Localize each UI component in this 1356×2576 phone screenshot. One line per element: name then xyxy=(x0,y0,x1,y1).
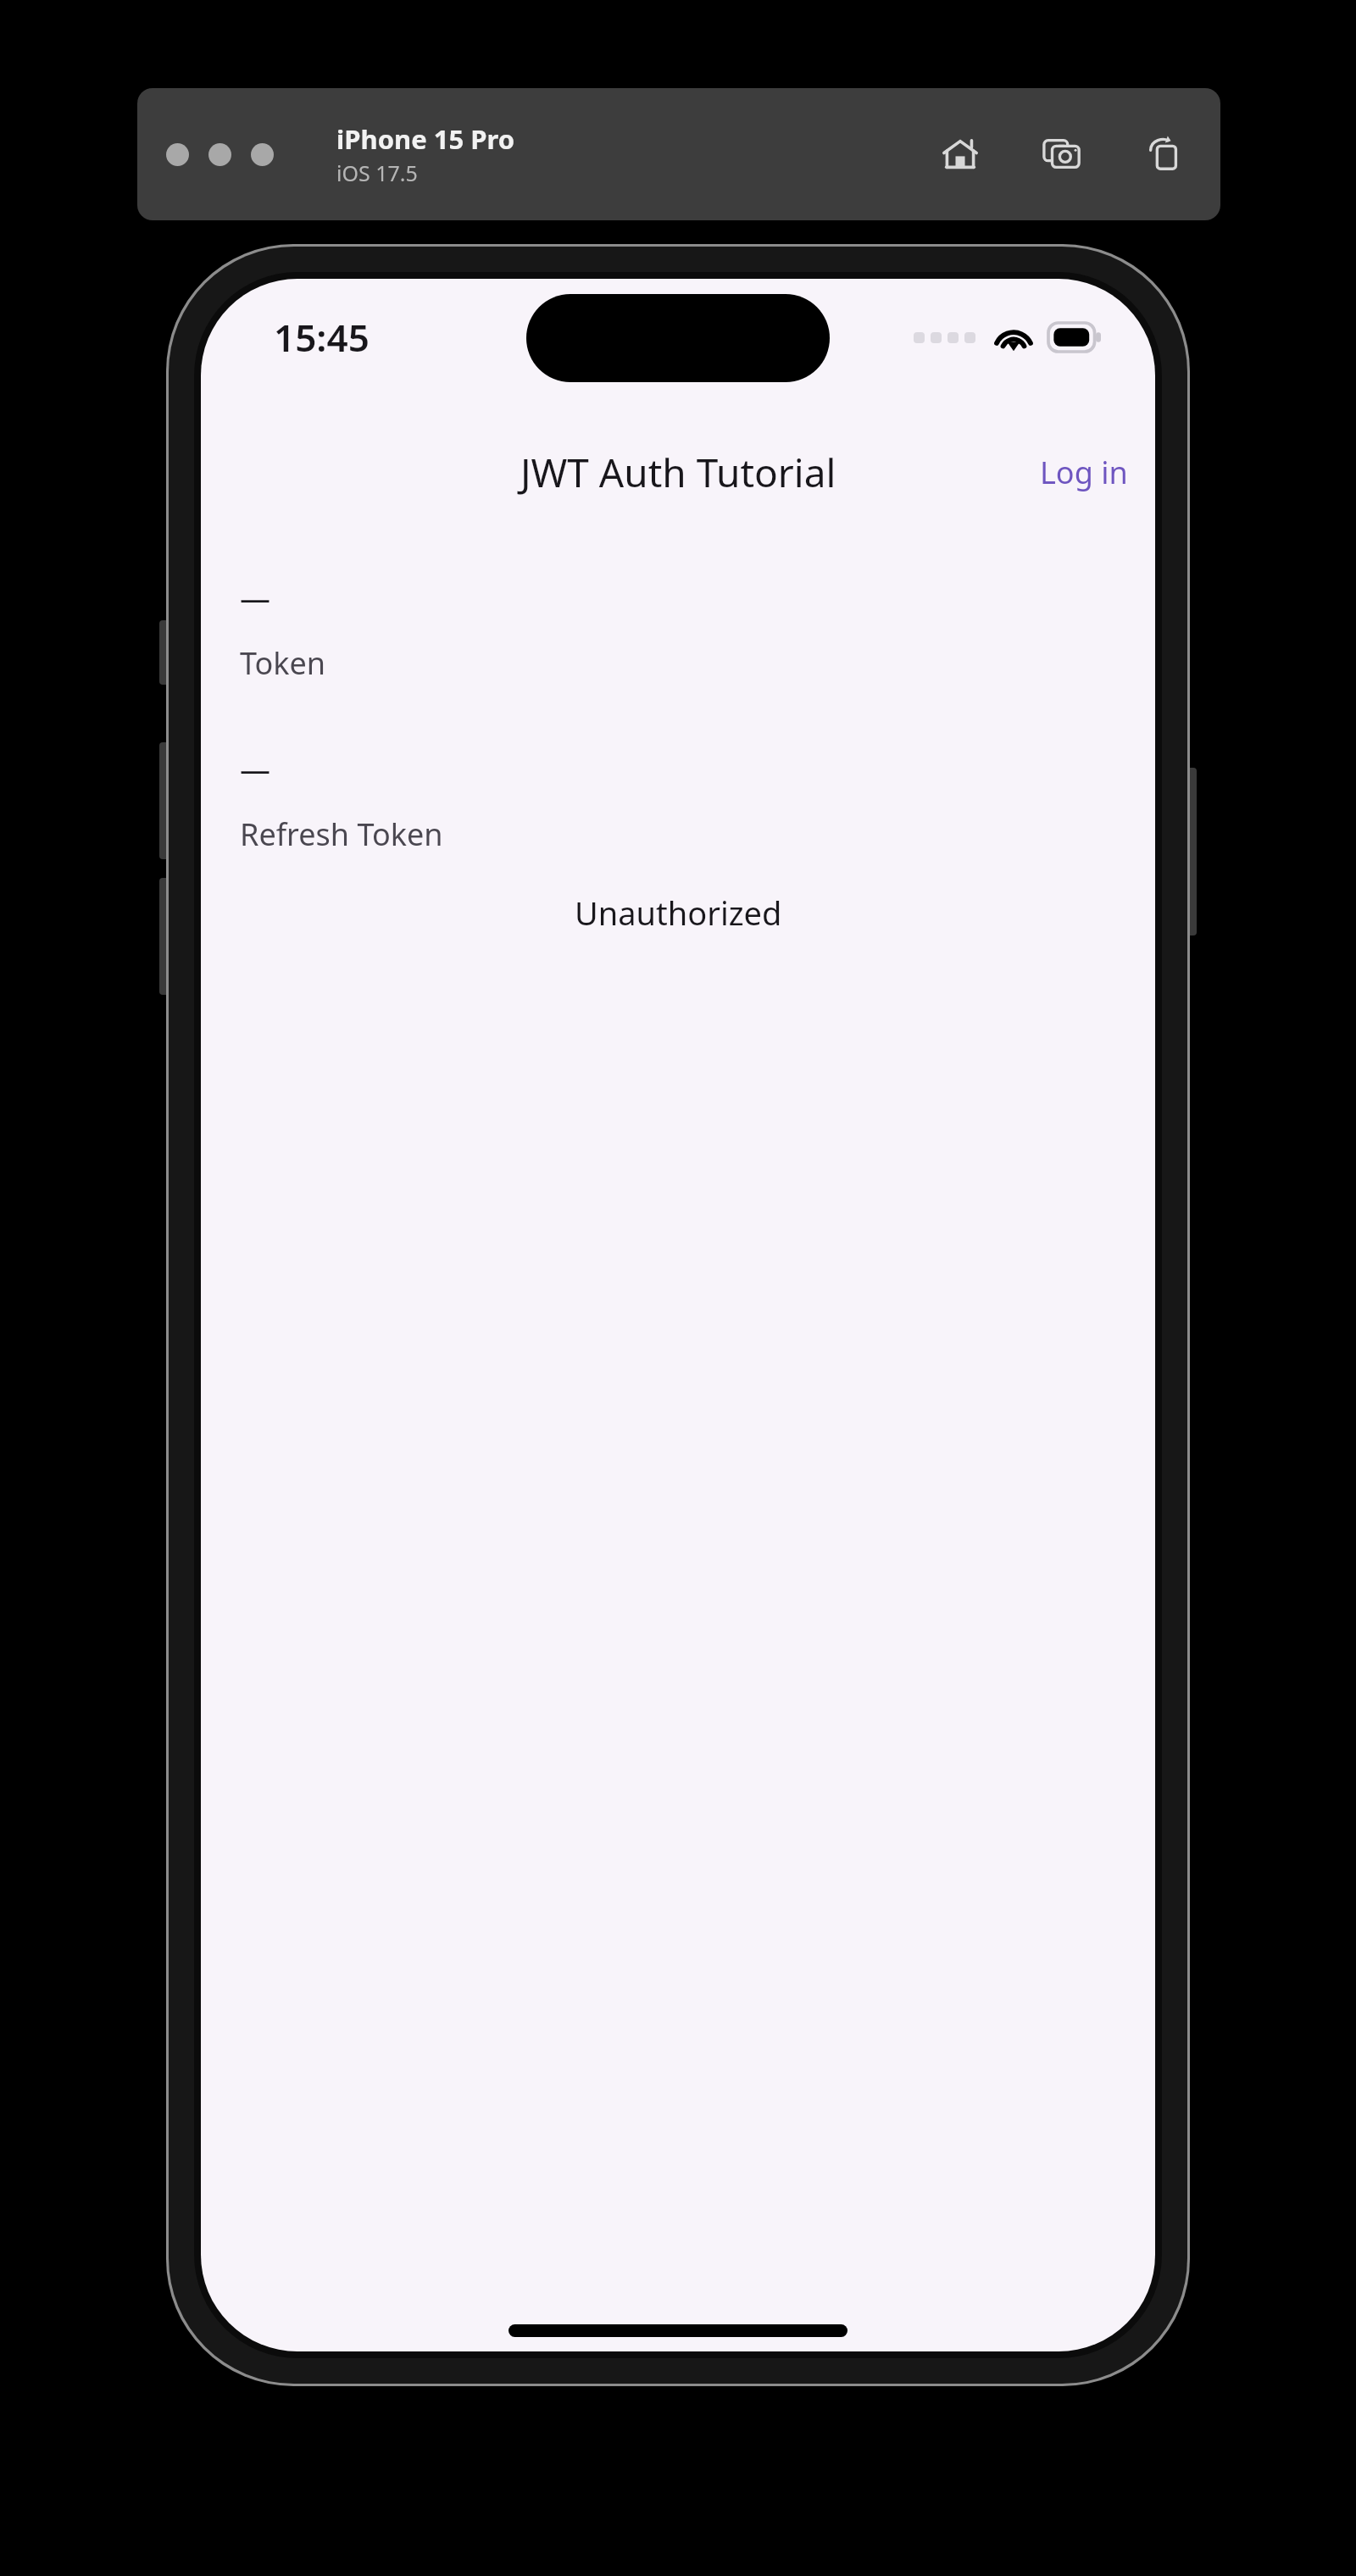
staticText: Unauthorized xyxy=(575,891,782,935)
button[interactable]: Volume up xyxy=(159,742,175,859)
button[interactable] xyxy=(251,143,274,166)
staticText: — xyxy=(240,748,271,790)
staticText: Log in xyxy=(1040,452,1128,493)
button[interactable]: Log in xyxy=(1031,445,1136,500)
staticText: iPhone 15 Pro xyxy=(336,121,515,157)
staticText: Refresh Token xyxy=(240,813,443,855)
staticText: JWT Auth Tutorial xyxy=(520,446,836,499)
staticText: 15:45 xyxy=(274,312,370,363)
button[interactable]: Volume down xyxy=(159,878,175,995)
button[interactable]: Side button xyxy=(1181,768,1197,935)
button[interactable] xyxy=(166,143,189,166)
staticText: iOS 17.5 xyxy=(336,158,418,187)
button[interactable] xyxy=(208,143,231,166)
button[interactable]: Record screen xyxy=(1132,123,1195,186)
button[interactable]: Action button xyxy=(159,620,175,685)
button[interactable]: Home xyxy=(929,123,992,186)
button[interactable]: Screenshot xyxy=(1031,123,1093,186)
staticText: Token xyxy=(240,642,326,684)
button[interactable]: — xyxy=(201,748,1155,855)
button[interactable]: — xyxy=(201,577,1155,684)
staticText: — xyxy=(240,577,271,619)
